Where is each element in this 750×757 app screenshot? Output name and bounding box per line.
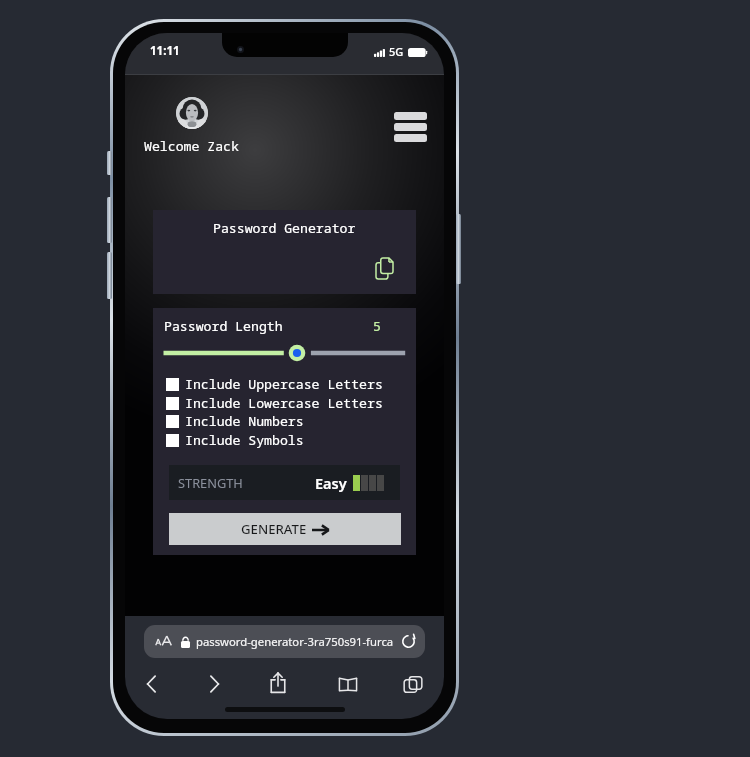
staticText: 5G (389, 44, 404, 59)
staticText: GENERATE (241, 520, 307, 538)
staticText: Include Uppercase Letters (185, 375, 383, 393)
button[interactable]: Include Numbers (166, 412, 404, 430)
staticText: 11:11 (150, 43, 180, 59)
button[interactable]: Bookmarks (335, 671, 361, 697)
button[interactable]: Tabs (400, 671, 426, 697)
button[interactable]: Copy password (376, 258, 393, 279)
staticText: Welcome Zack (144, 137, 239, 155)
staticText: Include Symbols (185, 431, 304, 449)
button[interactable]: GENERATE (169, 513, 401, 545)
staticText: Password Generator (213, 219, 356, 237)
staticText: Easy (315, 473, 347, 493)
button[interactable]: Password length slider (162, 343, 407, 363)
staticText: Include Numbers (185, 412, 304, 430)
staticText: Include Lowercase Letters (185, 394, 383, 412)
button[interactable]: Include Symbols (166, 431, 404, 449)
button[interactable]: Back (139, 671, 165, 697)
button[interactable]: Menu (394, 112, 427, 142)
button[interactable]: Share (265, 671, 291, 697)
button[interactable]: Include Uppercase Letters (166, 375, 404, 393)
button[interactable]: Include Lowercase Letters (166, 394, 404, 412)
staticText: 5 (373, 317, 381, 335)
staticText: password-generator-3ra750s91-furca (196, 634, 394, 649)
staticText: Password Length (164, 317, 283, 335)
button[interactable]: password-generator-3ra750s91-furca (144, 625, 425, 658)
button[interactable]: Forward (201, 671, 227, 697)
staticText: STRENGTH (178, 474, 243, 491)
